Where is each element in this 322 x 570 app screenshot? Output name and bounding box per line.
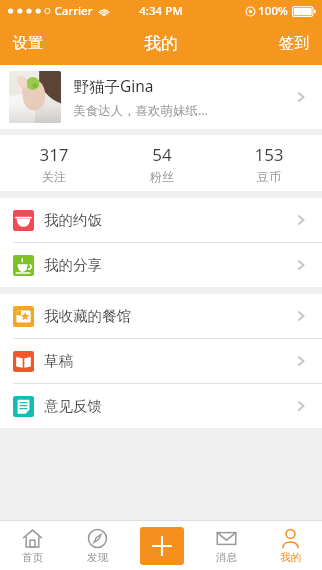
staticText: Carrier bbox=[54, 3, 93, 19]
staticText: 野猫子Gina bbox=[73, 75, 154, 96]
staticText: 100% bbox=[258, 3, 288, 19]
staticText: 我的 bbox=[144, 33, 178, 54]
button[interactable]: 我的 bbox=[258, 523, 322, 569]
staticText: 317 bbox=[39, 143, 69, 166]
staticText: 设置 bbox=[13, 34, 43, 53]
button[interactable]: 签到 bbox=[269, 28, 322, 59]
staticText: 草稿 bbox=[44, 352, 73, 370]
button[interactable]: 草稿 bbox=[0, 339, 322, 383]
staticText: 关注 bbox=[42, 169, 66, 184]
staticText: 意见反馈 bbox=[44, 397, 102, 415]
staticText: 我的约饭 bbox=[44, 211, 102, 229]
staticText: 54 bbox=[152, 143, 172, 166]
button[interactable]: 我的约饭 bbox=[0, 198, 322, 242]
button[interactable]: Create bbox=[140, 527, 184, 565]
staticText: 我收藏的餐馆 bbox=[44, 307, 131, 325]
button[interactable]: 我的分享 bbox=[0, 243, 322, 287]
staticText: 4:34 PM bbox=[139, 3, 183, 19]
staticText: 我的 bbox=[280, 551, 301, 564]
staticText: 153 bbox=[254, 143, 284, 166]
staticText: 粉丝 bbox=[150, 169, 174, 184]
button[interactable]: 野猫子Gina bbox=[0, 65, 322, 129]
staticText: 我的分享 bbox=[44, 256, 102, 274]
button[interactable]: 设置 bbox=[0, 28, 53, 59]
button[interactable]: 317 bbox=[0, 137, 108, 190]
button[interactable]: 意见反馈 bbox=[0, 384, 322, 428]
button[interactable]: 我收藏的餐馆 bbox=[0, 294, 322, 338]
staticText: 发现 bbox=[87, 551, 108, 564]
button[interactable]: 153 bbox=[215, 137, 322, 190]
button[interactable]: 首页 bbox=[0, 523, 65, 569]
button[interactable]: 54 bbox=[108, 137, 215, 190]
staticText: 美食达人，喜欢萌妹纸… bbox=[73, 102, 208, 119]
button[interactable]: 发现 bbox=[65, 523, 130, 569]
staticText: 首页 bbox=[22, 551, 43, 564]
button[interactable]: 消息 bbox=[194, 523, 258, 569]
staticText: 豆币 bbox=[257, 169, 281, 184]
staticText: 签到 bbox=[279, 34, 309, 53]
staticText: 消息 bbox=[216, 551, 237, 564]
